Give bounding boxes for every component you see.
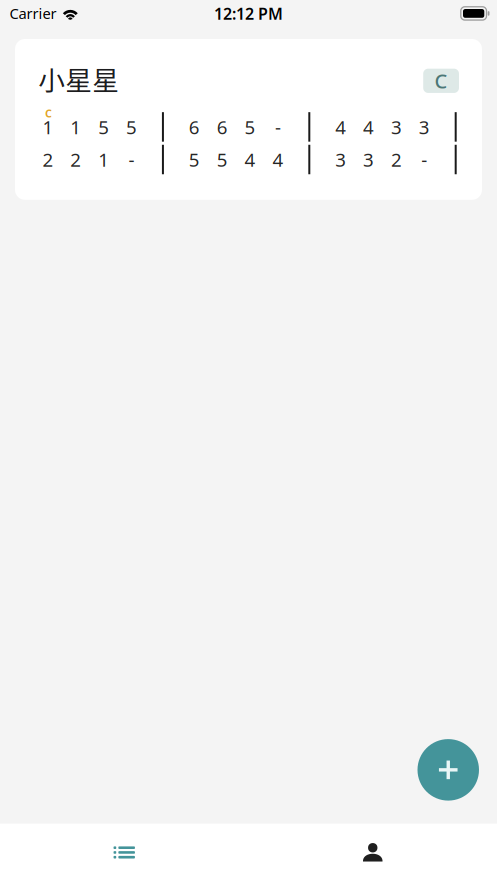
staticText: -	[421, 147, 427, 172]
staticText: 小星星	[38, 59, 119, 98]
staticText: 12:12 PM	[214, 3, 283, 24]
staticText: 5	[98, 114, 109, 139]
staticText: 1	[70, 114, 81, 139]
staticText: 5	[245, 114, 256, 139]
staticText: 3	[363, 147, 374, 172]
staticText: 5	[217, 147, 228, 172]
staticText: 3	[419, 114, 430, 139]
staticText: Carrier	[10, 4, 57, 23]
staticText: 2	[391, 147, 402, 172]
button[interactable]: C	[423, 69, 459, 93]
staticText: 3	[391, 114, 402, 139]
staticText: 6	[217, 114, 228, 139]
staticText: -	[128, 147, 134, 172]
button[interactable]: Profile	[248, 824, 497, 883]
staticText: 4	[363, 114, 374, 139]
staticText: 6	[189, 114, 200, 139]
staticText: C	[435, 67, 448, 94]
staticText: -	[275, 114, 281, 139]
staticText: 3	[335, 147, 346, 172]
button[interactable]: Add song	[417, 739, 479, 801]
staticText: 2	[70, 147, 81, 172]
staticText: 2	[42, 147, 53, 172]
staticText: 1	[98, 147, 109, 172]
staticText: 5	[126, 114, 137, 139]
staticText: C	[45, 106, 52, 120]
staticText: 4	[245, 147, 256, 172]
staticText: 4	[272, 147, 283, 172]
button[interactable]: Songs	[0, 824, 248, 883]
staticText: 5	[189, 147, 200, 172]
staticText: 4	[335, 114, 346, 139]
staticText: 1	[42, 114, 53, 139]
